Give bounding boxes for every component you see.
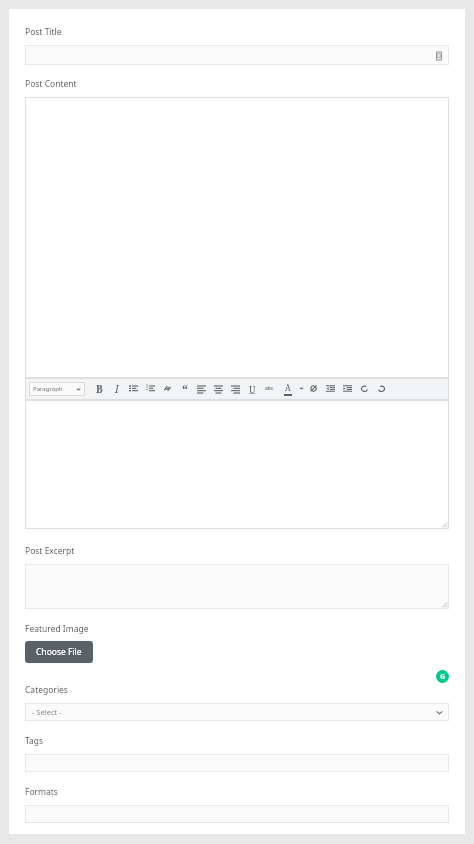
button[interactable]: Insert link [159, 378, 176, 399]
staticText: “ [182, 381, 188, 397]
button[interactable]: Italic [108, 378, 125, 399]
button[interactable]: Decrease indent [322, 378, 339, 399]
staticText: U [249, 383, 256, 395]
button[interactable]: Title helper [433, 50, 444, 61]
button[interactable]: Choose File [25, 641, 93, 663]
staticText: Paragraph [33, 385, 63, 393]
button[interactable]: Bold [91, 378, 108, 399]
staticText: Tags [25, 735, 44, 747]
staticText: Featured Image [25, 623, 89, 635]
button[interactable]: Increase indent [339, 378, 356, 399]
button[interactable]: Align center [210, 378, 227, 399]
button[interactable]: Post Excerpt text area [25, 564, 449, 609]
button[interactable]: Visual editor [25, 97, 449, 378]
button[interactable]: Undo [356, 378, 373, 399]
button[interactable]: Grammar check [436, 670, 449, 683]
staticText: Choose File [36, 646, 82, 658]
staticText: B [96, 382, 103, 396]
button[interactable]: Tags input [25, 754, 449, 772]
staticText: abc [265, 385, 274, 392]
button[interactable]: Categories select [25, 703, 449, 721]
button[interactable]: Content text area [25, 400, 449, 529]
button[interactable]: Text colour [278, 378, 297, 399]
button[interactable]: Blockquote [176, 378, 193, 399]
button[interactable]: Post Title input [25, 45, 449, 65]
button[interactable]: Strikethrough [261, 378, 278, 399]
staticText: G [440, 672, 446, 682]
button[interactable]: Numbered list [142, 378, 159, 399]
staticText: - Select - [32, 707, 62, 717]
staticText: I [115, 382, 119, 396]
staticText: Categories [25, 684, 68, 696]
staticText: A [285, 382, 291, 393]
button[interactable]: Clear formatting [305, 378, 322, 399]
button[interactable]: Bulleted list [125, 378, 142, 399]
staticText: Post Title [25, 26, 62, 38]
button[interactable]: Colour options [297, 378, 305, 399]
button[interactable]: Align left [193, 378, 210, 399]
staticText: Post Content [25, 78, 77, 90]
button[interactable]: Paragraph [29, 382, 85, 396]
button[interactable]: Formats input [25, 805, 449, 823]
button[interactable]: Redo [373, 378, 390, 399]
button[interactable]: Underline [244, 378, 261, 399]
button[interactable]: Align right [227, 378, 244, 399]
staticText: Post Excerpt [25, 545, 75, 557]
staticText: Formats [25, 786, 58, 798]
